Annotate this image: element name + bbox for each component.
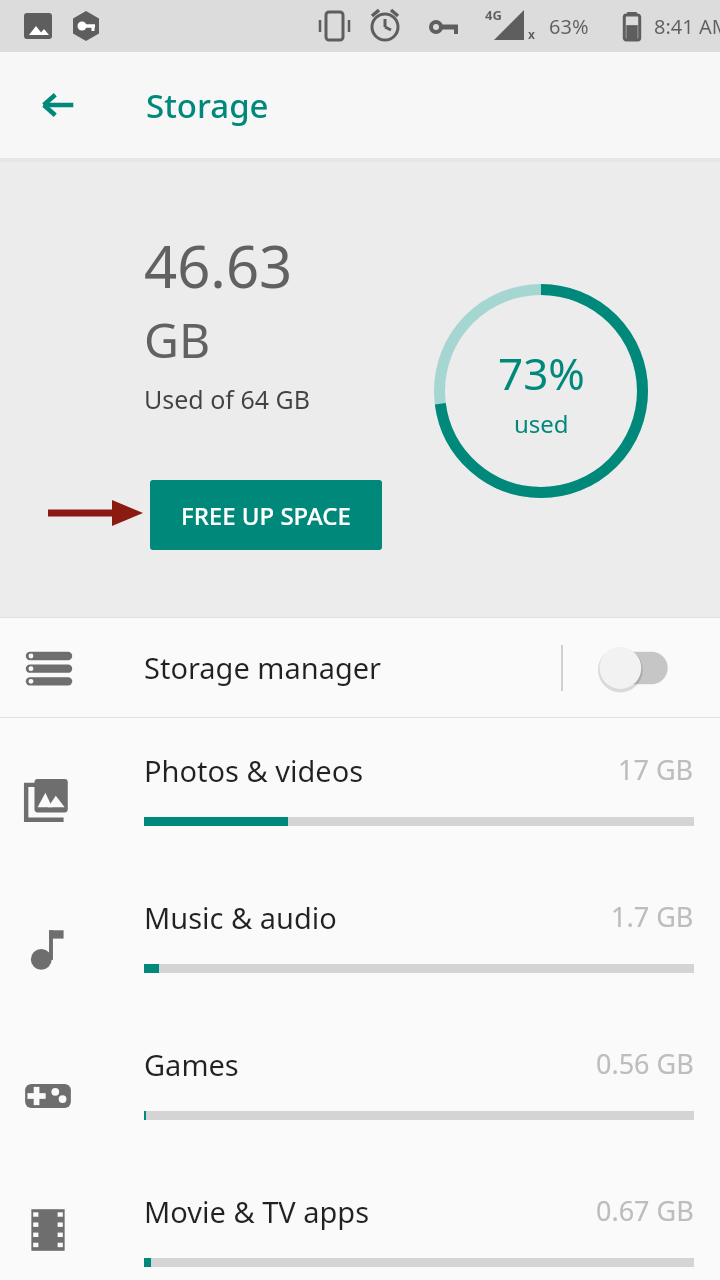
button[interactable]: Photos & videos <box>0 718 720 865</box>
staticText: 63% <box>549 13 589 40</box>
staticText: 73% <box>498 343 585 403</box>
button[interactable]: Storage manager toggle <box>592 639 678 697</box>
staticText: 46.63 <box>144 226 293 305</box>
staticText: Games <box>144 1045 239 1084</box>
button[interactable]: Movie & TV apps <box>0 1159 720 1280</box>
staticText: Storage <box>146 83 269 128</box>
staticText: used <box>514 407 569 440</box>
staticText: 8:41 AM <box>654 13 720 40</box>
staticText: Music & audio <box>144 898 337 937</box>
staticText: 4G <box>485 6 502 24</box>
staticText: Storage manager <box>144 648 382 687</box>
staticText: Photos & videos <box>144 751 364 790</box>
staticText: Used of 64 GB <box>144 382 311 416</box>
staticText: FREE UP SPACE <box>181 499 351 532</box>
button[interactable]: FREE UP SPACE <box>150 480 382 550</box>
staticText: 1.7 GB <box>611 898 694 935</box>
staticText: 0.67 GB <box>596 1192 694 1229</box>
staticText: 17 GB <box>618 751 694 788</box>
staticText: Movie & TV apps <box>144 1192 370 1231</box>
staticText: x <box>528 26 535 42</box>
button[interactable]: Music & audio <box>0 865 720 1012</box>
staticText: GB <box>144 307 211 372</box>
button[interactable]: Back <box>22 69 94 141</box>
button[interactable]: Games <box>0 1012 720 1159</box>
staticText: 0.56 GB <box>596 1045 694 1082</box>
button[interactable]: Storage manager <box>0 618 720 717</box>
